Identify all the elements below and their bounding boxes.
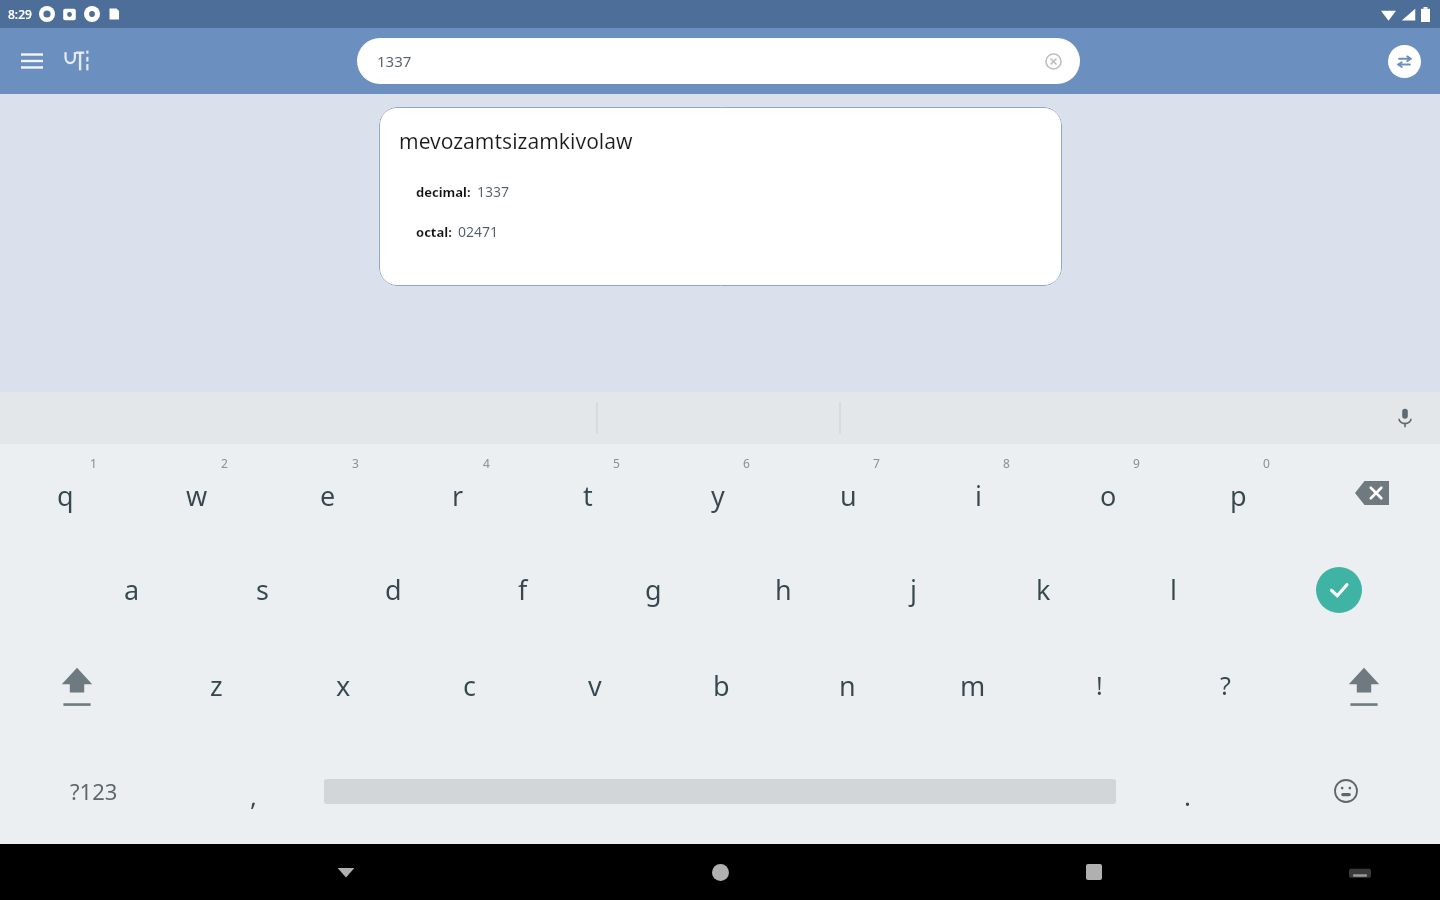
staticText: mevozamtsizamkivolaw	[399, 127, 633, 156]
staticText: 02471	[458, 222, 499, 241]
staticText: q	[57, 477, 74, 514]
staticText: 3	[352, 455, 359, 471]
staticText: !	[1096, 668, 1103, 702]
button[interactable]: n	[784, 638, 910, 738]
button[interactable]: ?	[1162, 638, 1288, 738]
button[interactable]: Recent apps	[1066, 844, 1122, 900]
staticText: 9	[1133, 455, 1140, 471]
button[interactable]: Hide keyboard	[318, 844, 374, 900]
staticText: d	[385, 571, 402, 608]
button[interactable]: h	[718, 541, 848, 638]
button[interactable]: ,	[188, 738, 318, 844]
button[interactable]: m	[910, 638, 1036, 738]
staticText: u	[840, 477, 857, 514]
button[interactable]: Switch keyboard	[1338, 850, 1382, 894]
button[interactable]: ?123	[0, 738, 188, 844]
staticText: 1337	[477, 182, 510, 201]
staticText: octal:	[416, 223, 452, 241]
button[interactable]: u	[783, 444, 913, 541]
button[interactable]: s	[197, 541, 328, 638]
staticText: 1	[90, 455, 97, 471]
staticText: c	[463, 667, 476, 704]
button[interactable]: q	[0, 444, 131, 541]
staticText: ,	[250, 778, 257, 813]
staticText: 8:29	[8, 6, 32, 22]
staticText: z	[210, 667, 223, 704]
staticText: x	[336, 667, 351, 704]
staticText: t	[583, 477, 593, 514]
staticText: ?	[1220, 668, 1231, 702]
staticText: 6	[743, 455, 750, 471]
button[interactable]: j	[848, 541, 978, 638]
button[interactable]: k	[978, 541, 1108, 638]
staticText: .	[1184, 778, 1191, 813]
button[interactable]: Home	[692, 844, 748, 900]
button[interactable]: Enter	[1238, 541, 1440, 638]
button[interactable]: a	[66, 541, 197, 638]
button[interactable]: x	[280, 638, 406, 738]
button[interactable]: z	[153, 638, 280, 738]
staticText: g	[645, 571, 662, 608]
button[interactable]: 1337	[357, 38, 1080, 84]
staticText: 1337	[377, 51, 412, 71]
staticText: a	[124, 571, 140, 608]
button[interactable]: Emoji	[1252, 738, 1440, 844]
staticText: k	[1036, 571, 1051, 608]
staticText: j	[910, 571, 917, 608]
button[interactable]: t	[523, 444, 653, 541]
staticText: 0	[1263, 455, 1270, 471]
staticText: i	[975, 477, 982, 514]
button[interactable]: App logo	[56, 39, 100, 83]
staticText: m	[960, 667, 986, 704]
button[interactable]: e	[262, 444, 393, 541]
button[interactable]: .	[1122, 738, 1252, 844]
button[interactable]: b	[658, 638, 784, 738]
staticText: 8	[1003, 455, 1010, 471]
button[interactable]: y	[653, 444, 783, 541]
button[interactable]: Clear query	[1040, 48, 1066, 74]
staticText: e	[320, 477, 336, 514]
staticText: 5	[613, 455, 620, 471]
staticText: h	[775, 571, 792, 608]
staticText: ?123	[70, 776, 118, 806]
button[interactable]: l	[1108, 541, 1238, 638]
button[interactable]	[318, 738, 1122, 844]
button[interactable]: Voice input	[1388, 401, 1422, 435]
button[interactable]: d	[328, 541, 458, 638]
button[interactable]: f	[458, 541, 588, 638]
button[interactable]: Swap conversion	[1382, 39, 1426, 83]
button[interactable]: w	[131, 444, 262, 541]
staticText: 7	[873, 455, 880, 471]
staticText: l	[1170, 571, 1177, 608]
button[interactable]: Backspace	[1303, 444, 1440, 541]
button[interactable]: p	[1173, 444, 1303, 541]
staticText: v	[588, 667, 602, 704]
button[interactable]: i	[913, 444, 1043, 541]
staticText: y	[711, 477, 725, 514]
button[interactable]: !	[1036, 638, 1162, 738]
staticText: p	[1230, 477, 1247, 514]
button[interactable]: v	[532, 638, 658, 738]
button[interactable]: g	[588, 541, 718, 638]
button[interactable]: Shift	[0, 638, 153, 738]
staticText: n	[839, 667, 856, 704]
button[interactable]: mevozamtsizamkivolaw	[379, 107, 1062, 286]
button[interactable]: Shift	[1288, 638, 1440, 738]
staticText: 2	[221, 455, 228, 471]
button[interactable]: o	[1043, 444, 1173, 541]
staticText: 4	[483, 455, 490, 471]
staticText: decimal:	[416, 183, 471, 201]
button[interactable]: Open navigation menu	[12, 41, 52, 81]
staticText: r	[452, 477, 464, 514]
button[interactable]: r	[393, 444, 523, 541]
staticText: s	[256, 571, 269, 608]
staticText: f	[518, 571, 528, 608]
staticText: o	[1100, 477, 1117, 514]
staticText: b	[713, 667, 730, 704]
button[interactable]: c	[406, 638, 532, 738]
staticText: w	[186, 477, 208, 514]
